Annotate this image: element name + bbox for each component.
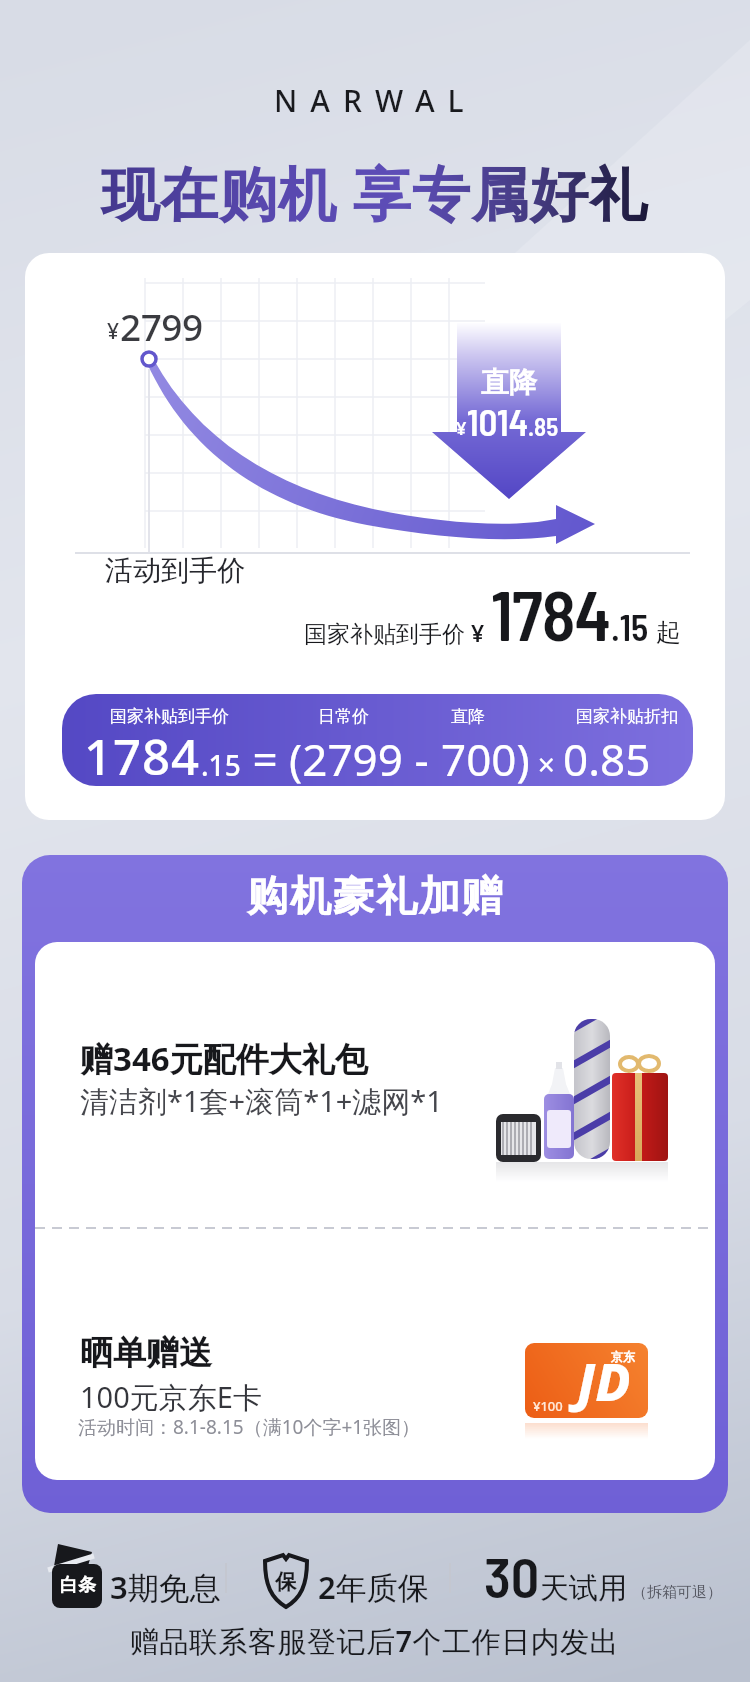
staticText: 1784 bbox=[491, 571, 611, 655]
staticText: NARWAL bbox=[274, 80, 477, 121]
staticText: ¥ bbox=[456, 416, 467, 441]
button[interactable]: JD bbox=[525, 1343, 648, 1418]
staticText: × bbox=[530, 744, 563, 785]
staticText: 100元京东E卡 bbox=[80, 1377, 262, 1417]
staticText: 活动时间：8.1-8.15（满10个字+1张图） bbox=[78, 1414, 421, 1440]
staticText: - bbox=[403, 729, 441, 786]
staticText: .85 bbox=[528, 411, 559, 441]
staticText: 国家补贴折扣 bbox=[576, 706, 678, 727]
button[interactable]: 国家补贴到手价 bbox=[62, 694, 693, 786]
staticText: 现在购机 享专属好礼 bbox=[101, 153, 649, 232]
staticText: 京东 bbox=[611, 1349, 635, 1364]
staticText: 国家补贴到手价 ¥ bbox=[304, 617, 491, 648]
staticText: JD bbox=[577, 1345, 631, 1416]
staticText: 天试用 bbox=[540, 1570, 627, 1607]
staticText: 1014 bbox=[467, 399, 528, 443]
staticText: 3期免息 bbox=[110, 1566, 221, 1608]
staticText: .15 bbox=[201, 746, 241, 784]
staticText: 直降 bbox=[481, 365, 537, 400]
staticText: 起 bbox=[656, 617, 681, 648]
staticText: 700) bbox=[441, 729, 530, 786]
staticText: 1784 bbox=[84, 723, 201, 786]
staticText: 日常价 bbox=[318, 706, 369, 727]
staticText: 直降 bbox=[451, 706, 485, 727]
staticText: 国家补贴到手价 bbox=[110, 706, 229, 727]
staticText: 购机豪礼加赠 bbox=[246, 871, 504, 923]
staticText: = (2799 bbox=[241, 729, 403, 786]
button[interactable] bbox=[80, 1036, 480, 1136]
staticText: ¥100 bbox=[533, 1397, 563, 1415]
staticText: .15 bbox=[611, 605, 656, 648]
button[interactable] bbox=[78, 1332, 478, 1442]
staticText: ¥ bbox=[107, 317, 120, 346]
staticText: 活动到手价 bbox=[105, 553, 245, 588]
staticText: 赠346元配件大礼包 bbox=[80, 1036, 368, 1081]
staticText: 2年质保 bbox=[318, 1566, 429, 1608]
staticText: 白条 bbox=[60, 1574, 96, 1597]
staticText: 2799 bbox=[120, 301, 203, 351]
staticText: 0.85 bbox=[563, 729, 651, 786]
staticText: 晒单赠送 bbox=[80, 1332, 212, 1374]
staticText: 保 bbox=[275, 1569, 296, 1595]
staticText: （拆箱可退） bbox=[632, 1583, 722, 1602]
staticText: 赠品联系客服登记后7个工作日内发出 bbox=[130, 1621, 620, 1661]
staticText: 清洁剂*1套+滚筒*1+滤网*1 bbox=[80, 1081, 443, 1121]
staticText: 30 bbox=[484, 1542, 540, 1609]
